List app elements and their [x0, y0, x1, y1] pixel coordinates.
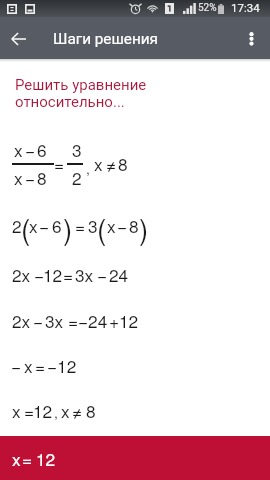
staticText: = — [35, 353, 46, 378]
staticText: 17:34 — [231, 1, 260, 14]
staticText: 3 — [88, 213, 98, 238]
staticText: 12 — [43, 262, 63, 287]
staticText: 8 — [118, 151, 128, 176]
staticText: 52% — [198, 2, 217, 14]
staticText: x — [12, 446, 21, 471]
staticText: −24 — [78, 308, 108, 333]
staticText: 2 — [12, 213, 22, 238]
staticText: 2 — [72, 165, 82, 190]
staticText: x — [29, 213, 38, 238]
staticText: 2x — [12, 308, 31, 333]
staticText: 6 — [37, 137, 47, 162]
staticText: 12 — [33, 398, 53, 423]
staticText: 8 — [86, 398, 96, 423]
staticText: −12 — [47, 353, 77, 378]
staticText: x — [24, 353, 33, 378]
staticText: + — [109, 308, 120, 333]
staticText: − — [25, 165, 36, 190]
staticText: 3 — [72, 137, 82, 162]
staticText: = — [24, 398, 35, 423]
staticText: 8 — [37, 165, 47, 190]
staticText: x — [14, 137, 23, 162]
staticText: x — [94, 151, 103, 176]
staticText: = — [22, 446, 33, 471]
staticText: x — [12, 398, 21, 423]
staticText: x — [14, 165, 23, 190]
staticText: − — [33, 308, 44, 333]
staticText: Шаги решения — [53, 30, 158, 48]
staticText: ( — [97, 208, 107, 248]
staticText: ( — [21, 208, 31, 248]
staticText: 12 — [119, 308, 139, 333]
staticText: , — [86, 158, 90, 178]
staticText: 3x — [45, 308, 64, 333]
button[interactable]: Back — [0, 17, 36, 59]
button[interactable]: More options — [234, 17, 270, 59]
staticText: 24 — [109, 262, 129, 287]
staticText: − — [39, 213, 50, 238]
staticText: 12 — [36, 446, 56, 471]
staticText: ≠ — [72, 398, 83, 423]
button[interactable]: x — [0, 436, 270, 480]
staticText: ≠ — [106, 151, 117, 176]
staticText: − — [97, 262, 108, 287]
staticText: x — [107, 213, 116, 238]
staticText: = — [75, 213, 86, 238]
staticText: 6 — [52, 213, 62, 238]
staticText: x — [61, 398, 70, 423]
staticText: Решить уравнение относительно... — [15, 76, 147, 110]
staticText: − — [34, 262, 45, 287]
staticText: 3x — [75, 262, 94, 287]
staticText: − — [117, 213, 128, 238]
staticText: , — [54, 402, 58, 422]
staticText: = — [63, 262, 74, 287]
staticText: 8 — [129, 213, 139, 238]
staticText: − — [25, 137, 36, 162]
staticText: − — [11, 353, 22, 378]
staticText: = — [54, 151, 65, 176]
staticText: ) — [139, 208, 149, 248]
staticText: 2x — [12, 262, 31, 287]
staticText: = — [68, 308, 79, 333]
staticText: ) — [63, 208, 73, 248]
